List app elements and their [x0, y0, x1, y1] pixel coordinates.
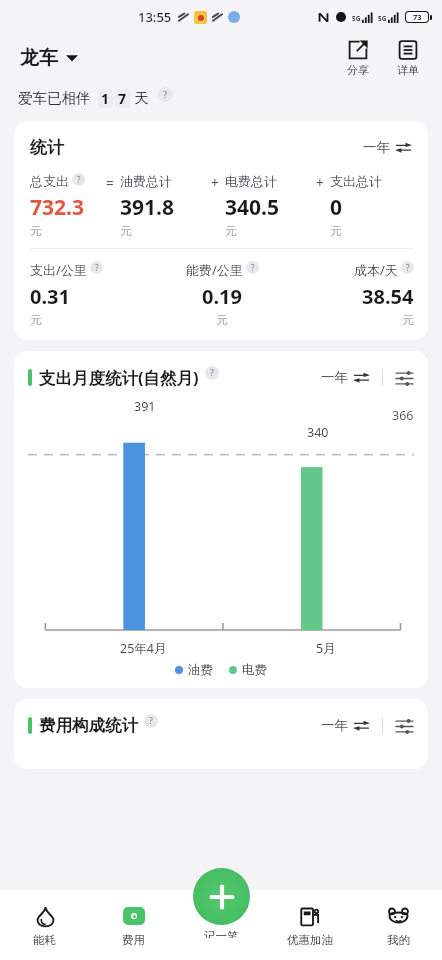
button[interactable]: 费用: [89, 890, 178, 960]
staticText: 一年: [363, 139, 390, 156]
button[interactable]: 龙车: [18, 42, 80, 74]
staticText: 5月: [316, 640, 336, 657]
button[interactable]: 一年: [319, 365, 372, 390]
staticText: 记一笔: [204, 929, 239, 938]
staticText: 366: [392, 407, 414, 424]
staticText: =: [106, 174, 114, 192]
staticText: 我的: [387, 933, 410, 947]
staticText: 元: [120, 224, 132, 238]
button[interactable]: Chart settings: [394, 368, 414, 388]
staticText: 732.3: [30, 193, 84, 222]
staticText: ?: [406, 262, 410, 273]
staticText: 元: [402, 313, 414, 327]
staticText: 5G: [352, 14, 361, 23]
staticText: 支出/公里: [30, 261, 87, 279]
staticText: 25年4月: [120, 640, 167, 657]
button[interactable]: 优惠加油: [266, 890, 354, 960]
staticText: 73: [413, 12, 422, 22]
staticText: 分享: [347, 63, 369, 77]
staticText: 元: [30, 313, 42, 327]
staticText: 电费总计: [225, 173, 277, 189]
staticText: 费用构成统计: [39, 715, 138, 736]
button[interactable]: 详单: [388, 38, 428, 79]
staticText: 统计: [30, 137, 64, 158]
staticText: 13:55: [138, 8, 172, 26]
staticText: 支出总计: [330, 173, 382, 189]
staticText: ?: [251, 262, 255, 273]
staticText: 38.54: [362, 283, 414, 310]
staticText: 340: [307, 424, 329, 441]
staticText: 详单: [397, 63, 419, 77]
staticText: 费用: [122, 933, 145, 947]
button[interactable]: 分享: [338, 38, 378, 79]
staticText: 391: [134, 398, 156, 415]
staticText: ?: [210, 367, 214, 379]
button[interactable]: Chart settings: [394, 716, 414, 736]
staticText: 能耗: [33, 933, 56, 947]
staticText: 元: [225, 224, 237, 238]
staticText: 7: [118, 89, 127, 108]
staticText: 一年: [321, 717, 348, 734]
staticText: 元: [330, 224, 342, 238]
staticText: 391.8: [120, 193, 174, 222]
button[interactable]: 我的: [354, 890, 442, 960]
staticText: 油费: [188, 662, 213, 678]
staticText: 优惠加油: [287, 933, 333, 947]
staticText: 一年: [321, 369, 348, 386]
staticText: +: [316, 174, 324, 192]
staticText: ?: [163, 88, 168, 101]
staticText: 元: [30, 224, 42, 238]
staticText: 元: [216, 313, 228, 327]
staticText: 0.19: [202, 283, 242, 310]
staticText: 340.5: [225, 193, 279, 222]
staticText: 总支出: [30, 173, 69, 189]
button[interactable]: 能耗: [0, 890, 89, 960]
staticText: 龙车: [20, 46, 58, 70]
staticText: 1: [101, 89, 110, 108]
staticText: +: [211, 174, 219, 192]
staticText: ?: [95, 262, 99, 273]
staticText: 0.31: [30, 283, 70, 310]
staticText: 爱车已相伴: [18, 89, 91, 107]
button[interactable]: 记一笔: [187, 868, 256, 938]
staticText: ?: [77, 174, 81, 185]
staticText: 0: [330, 193, 343, 222]
staticText: 油费总计: [120, 173, 172, 189]
staticText: 天: [134, 89, 149, 107]
staticText: 电费: [242, 662, 267, 678]
staticText: ?: [149, 715, 153, 727]
button[interactable]: 一年: [361, 135, 414, 160]
button[interactable]: 一年: [319, 713, 372, 738]
staticText: 成本/天: [354, 261, 398, 279]
staticText: 支出月度统计(自然月): [39, 366, 199, 389]
staticText: 5G: [378, 14, 387, 23]
staticText: 能费/公里: [186, 261, 243, 279]
